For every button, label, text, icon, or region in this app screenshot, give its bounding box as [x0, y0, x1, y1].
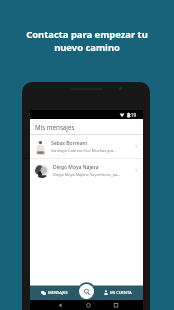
- staticText: MI CUENTA: [110, 290, 132, 295]
- button[interactable]: Sebas Borreani: [30, 135, 143, 158]
- staticText: MENSAJES: [48, 290, 68, 295]
- staticText: Santiago Cabrera Fos: Muchas gra...: [51, 148, 117, 153]
- button[interactable]: Buscar: [79, 284, 94, 299]
- staticText: Contacta para empezar tu nuevo camino: [26, 28, 148, 54]
- staticText: Sebas Borreani: [51, 140, 87, 147]
- staticText: Diego Moya Nájera: [53, 164, 99, 171]
- staticText: Diego Moya Nájera: Va perfecto, ya...: [53, 172, 121, 177]
- staticText: 3:19: [127, 112, 137, 118]
- button[interactable]: MI CUENTA: [103, 285, 133, 300]
- button[interactable]: MENSAJES: [40, 285, 69, 300]
- staticText: Mis mensajes: [35, 123, 75, 131]
- button[interactable]: Diego Moya Nájera: [30, 159, 143, 182]
